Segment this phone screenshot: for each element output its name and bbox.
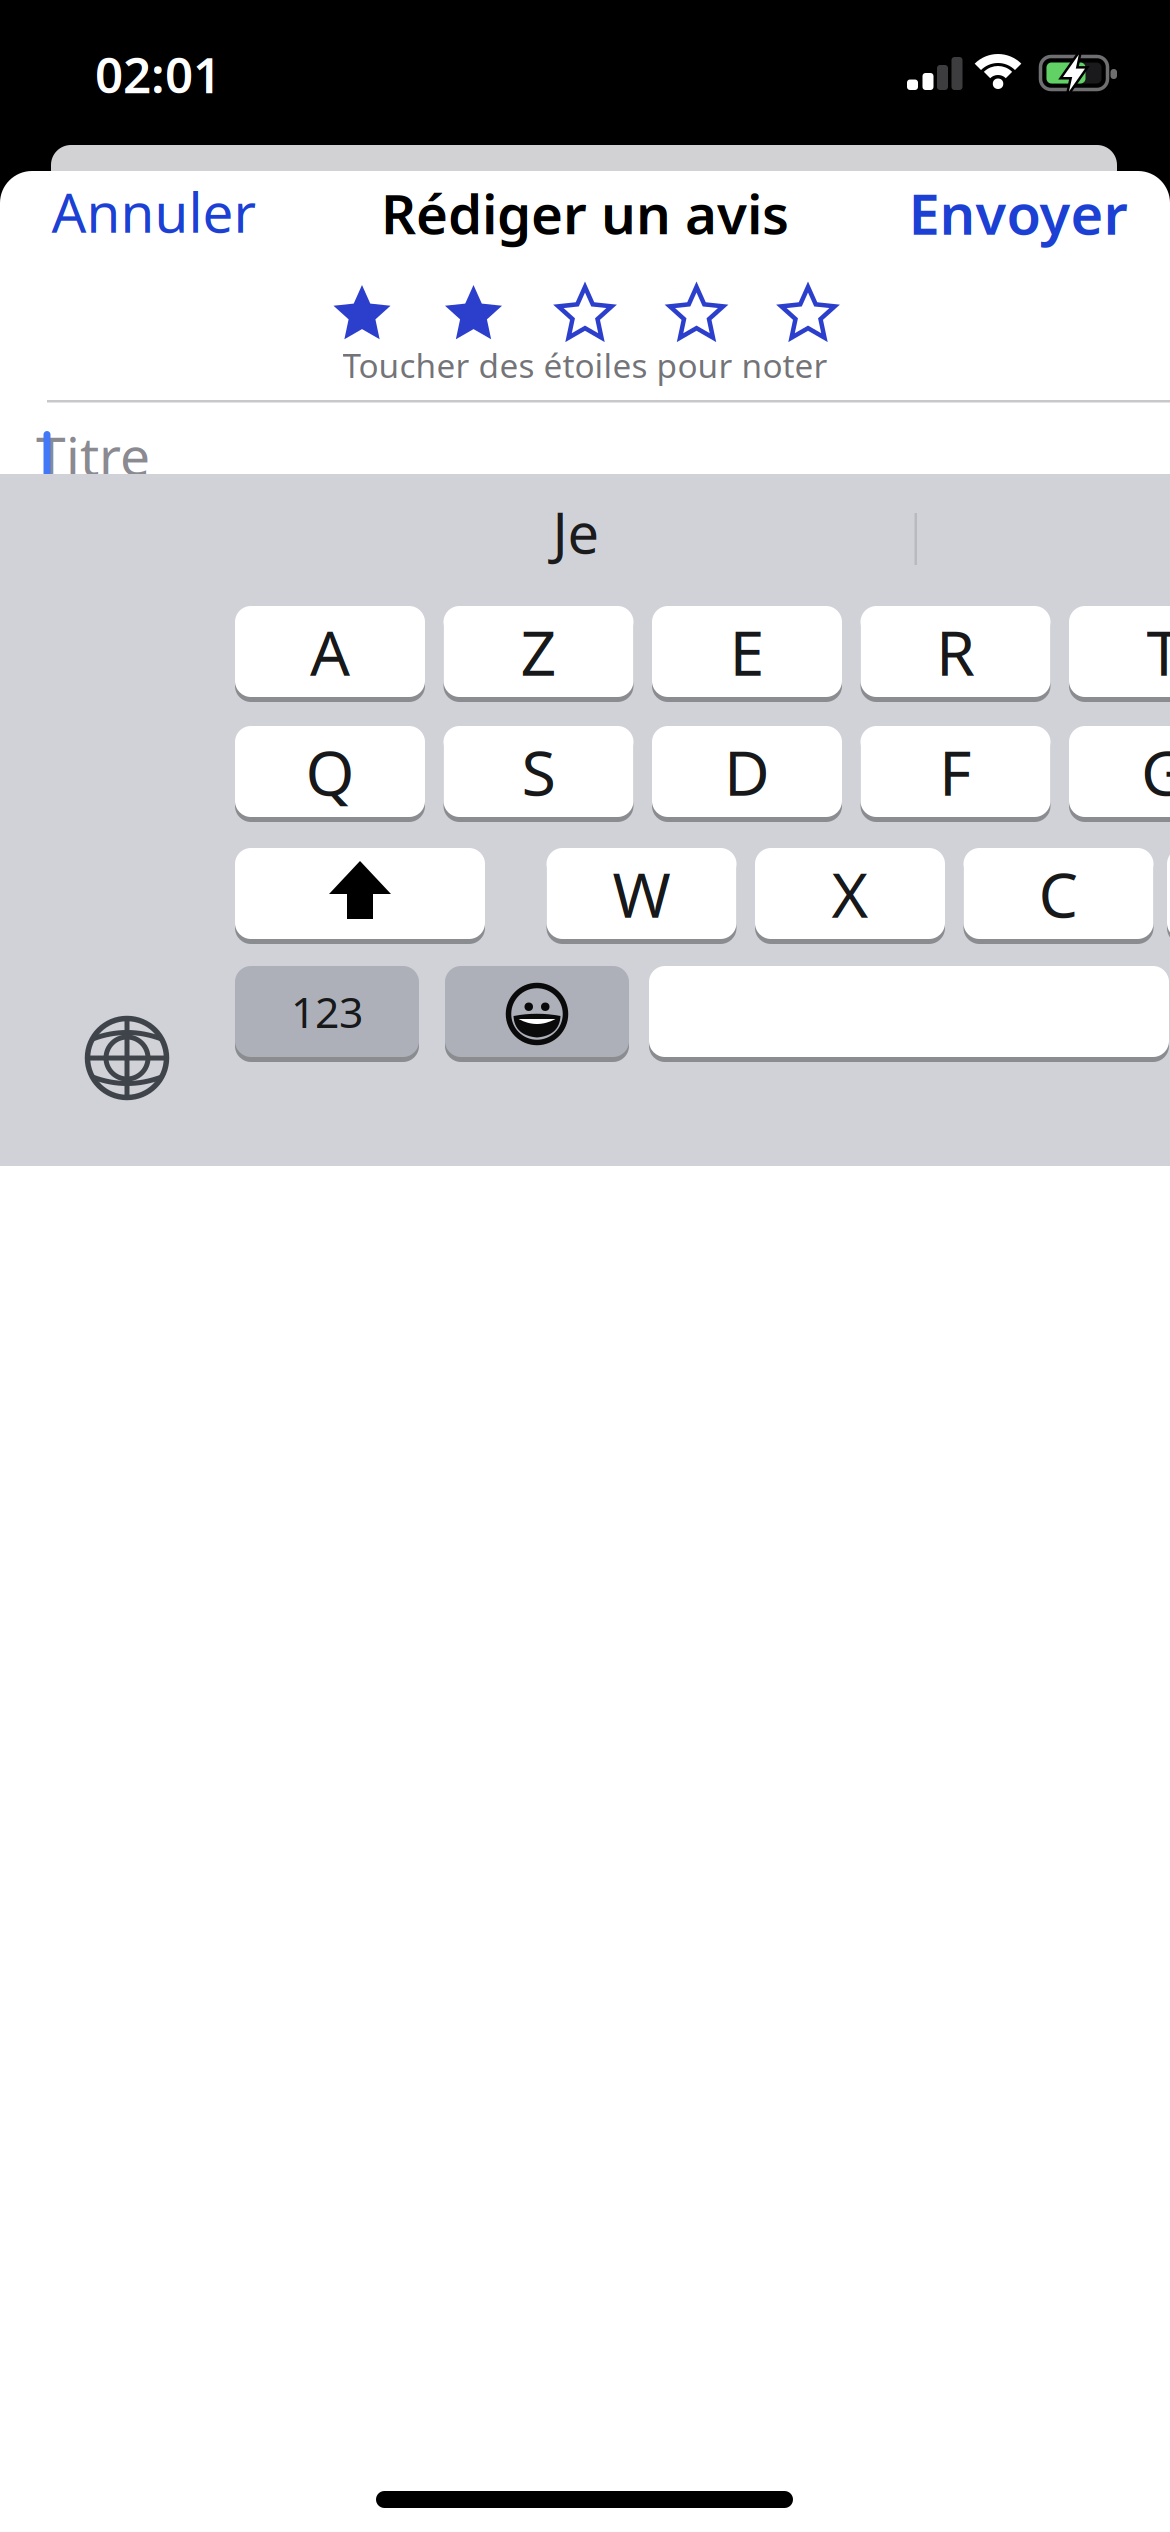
button[interactable]: Q: [235, 726, 425, 817]
button[interactable]: Emoji: [445, 966, 629, 1057]
button[interactable]: X: [755, 848, 945, 939]
button[interactable]: D: [652, 726, 842, 817]
staticText: Je: [552, 495, 599, 569]
button[interactable]: A: [235, 606, 425, 697]
button[interactable]: F: [860, 726, 1050, 817]
button[interactable]: Envoyer: [908, 176, 1127, 250]
button[interactable]: Annuler: [51, 175, 256, 248]
button[interactable]: Z: [443, 606, 633, 697]
staticText: C: [1038, 852, 1078, 935]
staticText: Rédiger un avis: [381, 177, 789, 249]
button[interactable]: G: [1069, 726, 1170, 817]
staticText: Q: [305, 730, 354, 813]
staticText: 02:01: [95, 41, 221, 107]
staticText: F: [939, 730, 972, 813]
staticText: W: [612, 852, 670, 935]
button[interactable]: 4 étoiles: [664, 283, 728, 347]
staticText: Titre: [36, 420, 150, 490]
button[interactable]: 5 étoiles: [776, 283, 840, 347]
staticText: Annuler: [51, 175, 256, 248]
button[interactable]: 123: [235, 966, 419, 1057]
button[interactable]: 2 étoiles: [441, 283, 505, 347]
button[interactable]: T: [1069, 606, 1170, 697]
staticText: T: [1146, 610, 1170, 693]
staticText: G: [1141, 730, 1170, 813]
button[interactable]: C: [963, 848, 1153, 939]
staticText: X: [831, 852, 868, 935]
button[interactable]: Espace: [649, 966, 1169, 1057]
staticText: S: [521, 730, 555, 813]
staticText: 123: [291, 983, 363, 1040]
button[interactable]: 1 étoile: [330, 283, 394, 347]
button[interactable]: S: [443, 726, 633, 817]
staticText: Z: [520, 610, 556, 693]
staticText: R: [936, 610, 975, 693]
button[interactable]: Changer de clavier: [81, 1012, 173, 1104]
staticText: A: [310, 610, 350, 693]
button[interactable]: V: [1167, 848, 1170, 939]
button[interactable]: W: [546, 848, 736, 939]
button[interactable]: R: [860, 606, 1050, 697]
button[interactable]: Titre: [36, 420, 150, 490]
staticText: Toucher des étoiles pour noter: [342, 343, 827, 387]
staticText: D: [724, 730, 770, 813]
staticText: Envoyer: [908, 176, 1127, 250]
button[interactable]: Maj: [235, 848, 485, 939]
button[interactable]: E: [652, 606, 842, 697]
button[interactable]: 3 étoiles: [553, 283, 617, 347]
staticText: E: [729, 610, 764, 693]
